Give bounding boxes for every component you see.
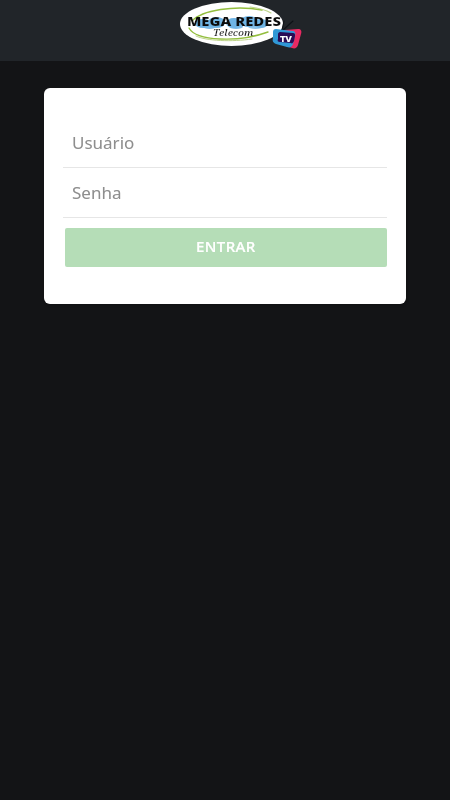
- staticText: MEGA REDES: [187, 14, 282, 29]
- button[interactable]: Senha: [63, 172, 387, 218]
- staticText: ENTRAR: [196, 236, 256, 256]
- other: Mega Redes Telecom logo: [0, 0, 450, 61]
- button[interactable]: Usuário: [63, 122, 387, 168]
- button[interactable]: ENTRAR: [65, 228, 387, 267]
- staticText: Telecom: [213, 27, 254, 39]
- staticText: Senha: [72, 181, 122, 204]
- staticText: TV: [280, 32, 292, 45]
- staticText: Usuário: [72, 131, 135, 154]
